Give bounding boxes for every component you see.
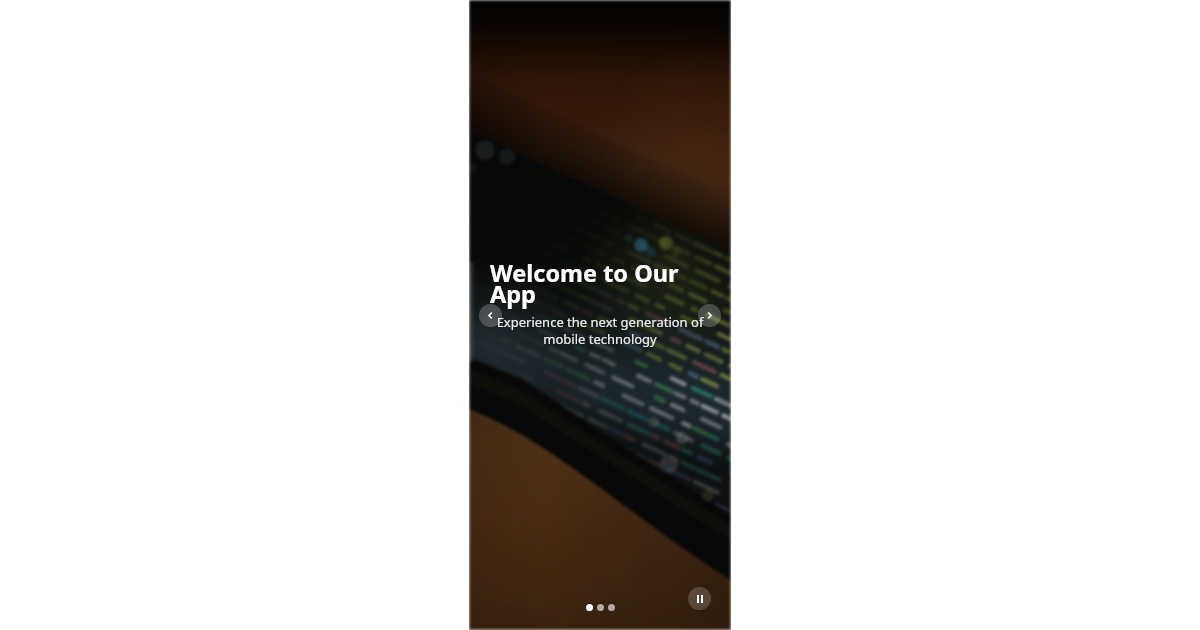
button[interactable]: Go to slide 3 xyxy=(608,604,615,611)
button[interactable]: Pause slideshow xyxy=(688,587,711,610)
button[interactable]: Go to slide 1 xyxy=(586,604,593,611)
button[interactable]: Previous slide xyxy=(479,304,502,327)
staticText: Experience the next generation of mobile… xyxy=(490,313,710,348)
button[interactable]: Next slide xyxy=(698,304,721,327)
staticText: App xyxy=(490,278,536,310)
staticText: Welcome to Our xyxy=(490,257,679,289)
button[interactable]: Go to slide 2 xyxy=(597,604,604,611)
